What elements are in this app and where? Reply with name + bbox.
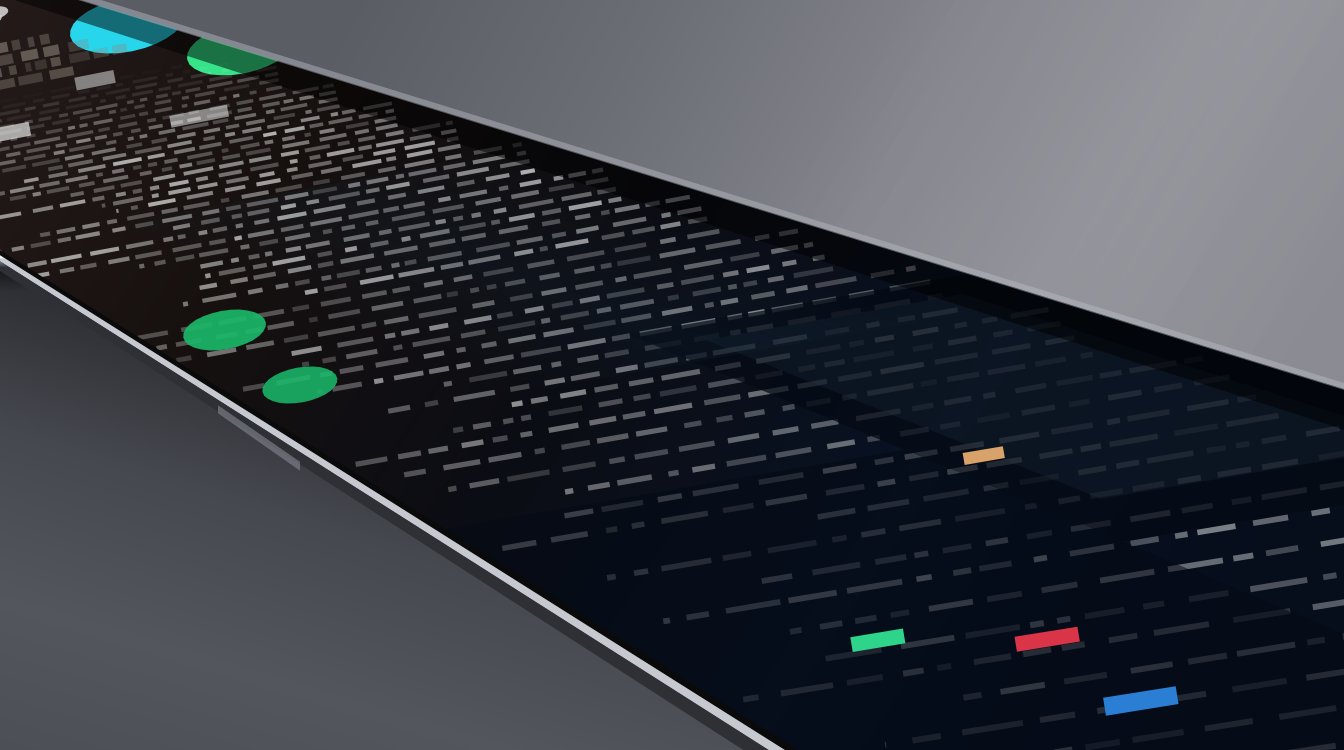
button[interactable]: Start new chat <box>196 14 304 74</box>
button[interactable]: Open profile <box>74 0 186 50</box>
button[interactable]: Conversation with contact <box>150 280 410 400</box>
button[interactable]: Open attachment <box>820 560 1200 740</box>
